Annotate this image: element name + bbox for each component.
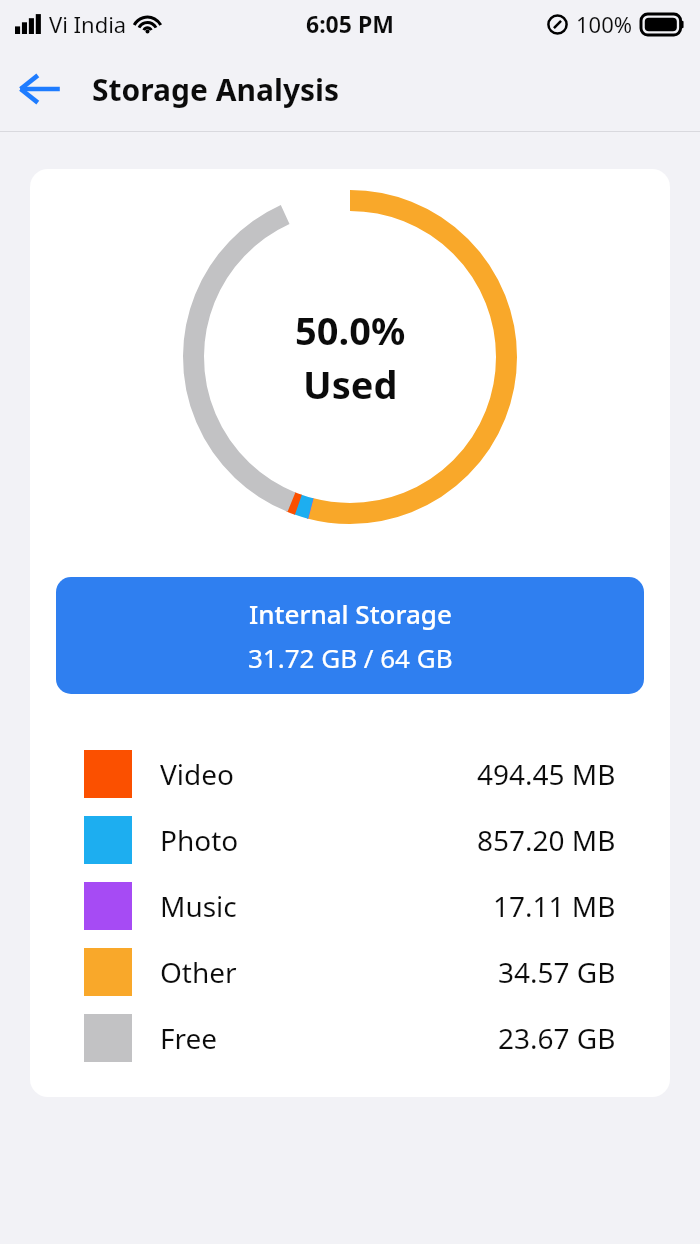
button[interactable]: Free: [30, 1005, 670, 1071]
staticText: Music: [160, 887, 237, 925]
staticText: 17.11 MB: [493, 887, 616, 925]
button[interactable]: Internal Storage: [56, 577, 644, 694]
staticText: 857.20 MB: [477, 821, 616, 859]
button[interactable]: Other: [30, 939, 670, 1005]
staticText: Free: [160, 1019, 218, 1057]
staticText: 50.0%: [295, 304, 406, 356]
staticText: Internal Storage: [249, 596, 452, 631]
staticText: 31.72 GB / 64 GB: [248, 640, 453, 675]
staticText: Vi India: [49, 9, 127, 39]
staticText: Used: [303, 358, 398, 410]
staticText: Photo: [160, 821, 239, 859]
staticText: Other: [160, 953, 237, 991]
button[interactable]: Photo: [30, 807, 670, 873]
button[interactable]: Back: [10, 59, 70, 119]
staticText: 494.45 MB: [477, 755, 616, 793]
staticText: 6:05 PM: [306, 8, 394, 39]
button[interactable]: Music: [30, 873, 670, 939]
staticText: 23.67 GB: [498, 1019, 616, 1057]
staticText: 34.57 GB: [498, 953, 616, 991]
staticText: Video: [160, 755, 234, 793]
button[interactable]: Video: [30, 741, 670, 807]
staticText: Storage Analysis: [92, 69, 340, 110]
staticText: 100%: [576, 9, 633, 39]
